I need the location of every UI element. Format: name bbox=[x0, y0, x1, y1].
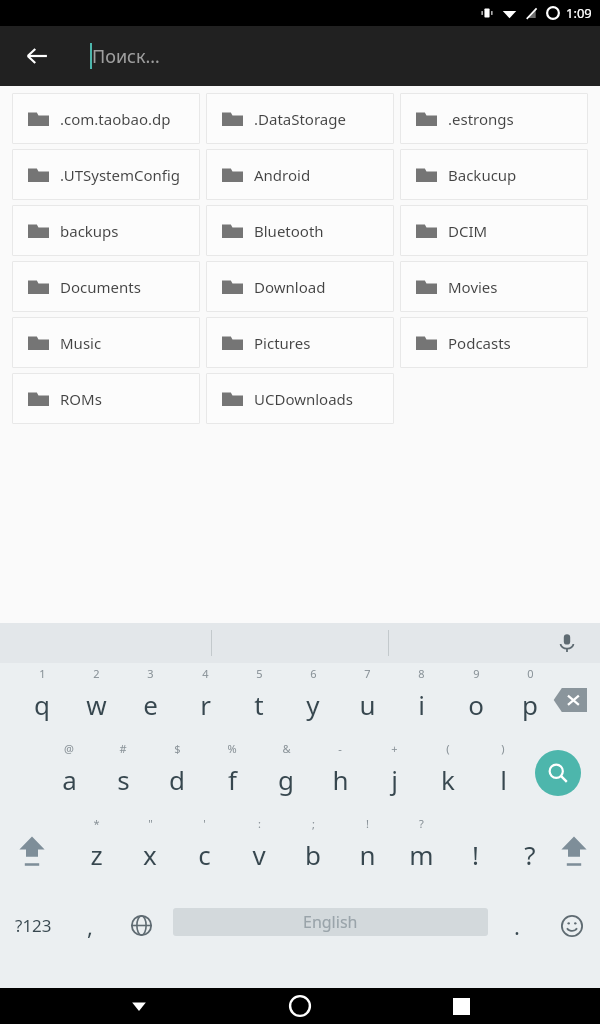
button[interactable]: Download bbox=[206, 261, 394, 312]
button[interactable]: : bbox=[232, 813, 286, 888]
button[interactable]: .UTSystemConfig bbox=[12, 149, 200, 200]
staticText: p bbox=[522, 687, 538, 722]
staticText: ( bbox=[446, 741, 450, 756]
button[interactable]: 7 bbox=[340, 663, 394, 738]
staticText: 7 bbox=[364, 666, 371, 681]
staticText: ) bbox=[501, 741, 505, 756]
button[interactable]: ' bbox=[177, 813, 231, 888]
staticText: 5 bbox=[256, 666, 263, 681]
button[interactable]: Documents bbox=[12, 261, 200, 312]
button[interactable]: 5 bbox=[232, 663, 286, 738]
button[interactable]: 3 bbox=[123, 663, 177, 738]
button[interactable]: Change language bbox=[118, 888, 164, 963]
button[interactable]: ( bbox=[421, 738, 475, 813]
staticText: Поиск… bbox=[92, 44, 160, 69]
button[interactable]: @ bbox=[42, 738, 96, 813]
button[interactable]: * bbox=[69, 813, 123, 888]
button[interactable]: Emoji bbox=[548, 888, 596, 963]
button[interactable]: Hide keyboard bbox=[115, 988, 163, 1024]
staticText: Backucup bbox=[448, 165, 517, 185]
button[interactable]: Movies bbox=[400, 261, 588, 312]
staticText: Movies bbox=[448, 277, 498, 297]
button[interactable]: . bbox=[495, 888, 539, 963]
button[interactable]: $ bbox=[150, 738, 204, 813]
staticText: v bbox=[252, 837, 266, 872]
button[interactable]: ) bbox=[476, 738, 530, 813]
button[interactable]: Bluetooth bbox=[206, 205, 394, 256]
button[interactable]: % bbox=[205, 738, 259, 813]
button[interactable]: Shift bbox=[8, 813, 56, 888]
button[interactable]: Backucup bbox=[400, 149, 588, 200]
button[interactable]: .com.taobao.dp bbox=[12, 93, 200, 144]
button[interactable]: 9 bbox=[449, 663, 503, 738]
button[interactable]: 6 bbox=[286, 663, 340, 738]
button[interactable]: UCDownloads bbox=[206, 373, 394, 424]
button[interactable]: .DataStorage bbox=[206, 93, 394, 144]
button[interactable]: English bbox=[173, 908, 488, 936]
button[interactable]: " bbox=[123, 813, 177, 888]
button[interactable]: Shift bbox=[550, 813, 598, 888]
staticText: Pictures bbox=[254, 333, 311, 353]
button[interactable]: Home bbox=[276, 988, 324, 1024]
button[interactable]: Podcasts bbox=[400, 317, 588, 368]
staticText: backups bbox=[60, 221, 119, 241]
button[interactable]: # bbox=[96, 738, 150, 813]
staticText: 4 bbox=[202, 666, 209, 681]
staticText: q bbox=[34, 687, 50, 722]
staticText: UCDownloads bbox=[254, 389, 354, 409]
staticText: Bluetooth bbox=[254, 221, 324, 241]
button[interactable]: ! bbox=[448, 813, 502, 888]
staticText: r bbox=[200, 687, 211, 722]
staticText: i bbox=[418, 687, 425, 722]
button[interactable]: ?123 bbox=[2, 888, 64, 963]
button[interactable]: backups bbox=[12, 205, 200, 256]
staticText: 3 bbox=[147, 666, 154, 681]
staticText: z bbox=[90, 837, 103, 872]
staticText: DCIM bbox=[448, 221, 488, 241]
staticText: " bbox=[148, 816, 153, 831]
staticText: b bbox=[305, 837, 321, 872]
button[interactable]: ? bbox=[394, 813, 448, 888]
button[interactable]: 2 bbox=[69, 663, 123, 738]
button[interactable]: Поиск… bbox=[90, 36, 600, 76]
button[interactable]: ? bbox=[503, 813, 557, 888]
button[interactable]: 4 bbox=[178, 663, 232, 738]
button[interactable]: & bbox=[259, 738, 313, 813]
button[interactable]: Music bbox=[12, 317, 200, 368]
staticText: l bbox=[500, 762, 507, 797]
button[interactable]: - bbox=[313, 738, 367, 813]
staticText: e bbox=[143, 687, 158, 722]
button[interactable]: Pictures bbox=[206, 317, 394, 368]
staticText: ' bbox=[203, 816, 206, 831]
staticText: 9 bbox=[473, 666, 480, 681]
staticText: 8 bbox=[418, 666, 425, 681]
staticText: o bbox=[468, 687, 484, 722]
button[interactable]: , bbox=[66, 888, 114, 963]
staticText: .com.taobao.dp bbox=[60, 109, 171, 129]
staticText: f bbox=[228, 762, 237, 797]
staticText: + bbox=[391, 741, 398, 756]
staticText: ? bbox=[524, 837, 536, 872]
staticText: a bbox=[62, 762, 77, 797]
staticText: Download bbox=[254, 277, 326, 297]
button[interactable]: Back bbox=[14, 33, 60, 79]
button[interactable]: ! bbox=[340, 813, 394, 888]
staticText: s bbox=[117, 762, 130, 797]
staticText: 1:09 bbox=[566, 4, 592, 22]
button[interactable]: Backspace bbox=[548, 683, 592, 717]
button[interactable]: Recent apps bbox=[437, 988, 485, 1024]
staticText: # bbox=[119, 741, 127, 756]
button[interactable]: Voice input bbox=[550, 626, 584, 660]
button[interactable]: .estrongs bbox=[400, 93, 588, 144]
button[interactable]: 0 bbox=[503, 663, 557, 738]
staticText: u bbox=[359, 687, 376, 722]
button[interactable]: 8 bbox=[394, 663, 448, 738]
button[interactable]: 1 bbox=[15, 663, 69, 738]
button[interactable]: Android bbox=[206, 149, 394, 200]
staticText: .estrongs bbox=[448, 109, 514, 129]
button[interactable]: ROMs bbox=[12, 373, 200, 424]
button[interactable]: ; bbox=[286, 813, 340, 888]
button[interactable]: Search bbox=[535, 750, 581, 796]
button[interactable]: + bbox=[367, 738, 421, 813]
button[interactable]: DCIM bbox=[400, 205, 588, 256]
